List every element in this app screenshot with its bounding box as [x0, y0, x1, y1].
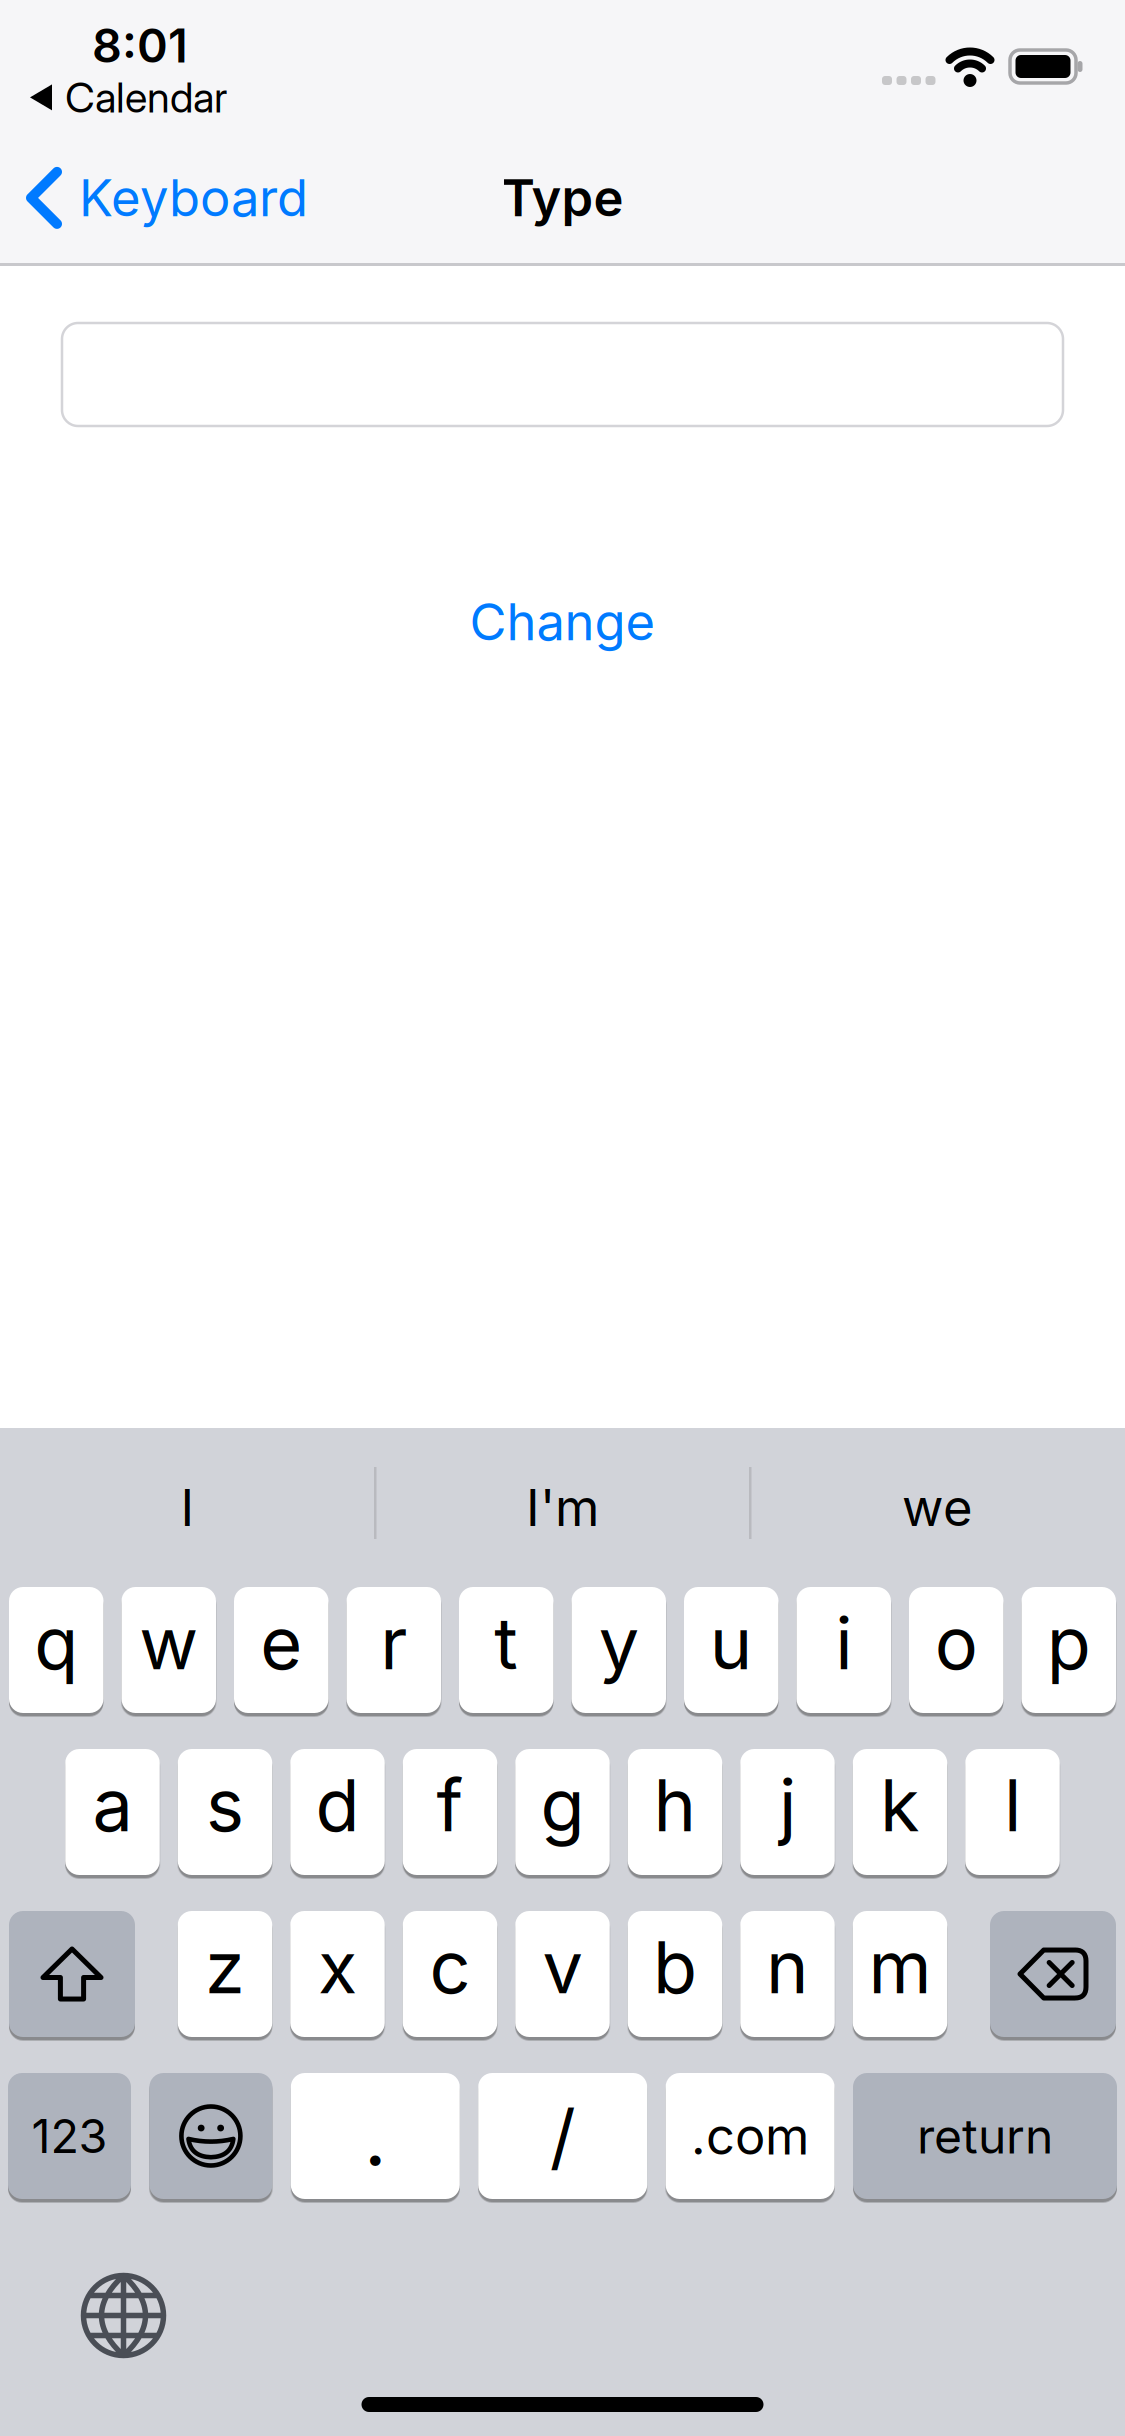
staticText: j [779, 1762, 796, 1847]
button[interactable]: Change [469, 592, 655, 652]
button[interactable]: Delete [990, 1911, 1116, 2037]
button[interactable]: o [909, 1587, 1003, 1713]
staticText: / [550, 2093, 576, 2178]
staticText: o [935, 1600, 978, 1685]
staticText: u [710, 1600, 753, 1685]
staticText: k [880, 1762, 920, 1847]
staticText: I [180, 1478, 194, 1537]
staticText: z [205, 1924, 245, 2009]
staticText: I'm [526, 1478, 599, 1537]
button[interactable]: . [291, 2073, 460, 2199]
button[interactable]: h [628, 1749, 722, 1875]
staticText: w [139, 1600, 198, 1685]
staticText: y [599, 1600, 639, 1685]
staticText: f [436, 1762, 463, 1847]
button[interactable]: Numbers [8, 2073, 131, 2199]
button[interactable]: w [121, 1587, 216, 1713]
staticText: s [206, 1762, 244, 1847]
button[interactable]: e [234, 1587, 328, 1713]
button[interactable]: p [1021, 1587, 1116, 1713]
staticText: h [653, 1762, 696, 1847]
staticText: p [1047, 1600, 1091, 1685]
button[interactable]: .com [666, 2073, 835, 2199]
button[interactable]: f [403, 1749, 497, 1875]
staticText: m [868, 1924, 931, 2009]
button[interactable]: Next keyboard [80, 2272, 166, 2358]
staticText: 8:01 [92, 18, 188, 73]
button[interactable]: l [965, 1749, 1060, 1875]
button[interactable]: y [571, 1587, 666, 1713]
staticText: v [542, 1924, 582, 2009]
staticText: b [653, 1924, 697, 2009]
button[interactable]: I'm [375, 1428, 750, 1587]
button[interactable]: c [403, 1911, 497, 2037]
staticText: we [902, 1478, 973, 1537]
button[interactable]: s [178, 1749, 272, 1875]
button[interactable]: Shift [9, 1911, 135, 2037]
button[interactable]: Emoji [149, 2073, 272, 2199]
button[interactable]: a [65, 1749, 160, 1875]
button[interactable]: i [796, 1587, 891, 1713]
button[interactable]: z [178, 1911, 272, 2037]
button[interactable]: v [515, 1911, 610, 2037]
staticText: Keyboard [79, 168, 308, 228]
button[interactable]: Return [853, 2073, 1117, 2199]
staticText: r [380, 1600, 407, 1685]
staticText: Change [469, 592, 655, 652]
staticText: c [429, 1924, 470, 2009]
staticText: t [494, 1600, 518, 1685]
staticText: d [315, 1762, 359, 1847]
staticText: g [540, 1762, 584, 1847]
button[interactable]: d [290, 1749, 385, 1875]
staticText: e [260, 1600, 302, 1685]
button[interactable]: t [459, 1587, 553, 1713]
button[interactable]: n [740, 1911, 835, 2037]
staticText: i [835, 1600, 852, 1685]
button[interactable]: g [515, 1749, 610, 1875]
staticText: n [766, 1924, 809, 2009]
button[interactable]: q [9, 1587, 103, 1713]
button[interactable]: / [478, 2073, 647, 2199]
button[interactable]: u [684, 1587, 778, 1713]
staticText: .com [691, 2106, 809, 2166]
staticText: Calendar [65, 73, 227, 122]
button[interactable]: m [853, 1911, 947, 2037]
staticText: x [318, 1924, 357, 2009]
staticText: l [1004, 1762, 1021, 1847]
staticText: a [92, 1762, 132, 1847]
button[interactable]: we [750, 1428, 1125, 1587]
staticText: 123 [31, 2108, 107, 2164]
button[interactable]: Back [31, 168, 308, 228]
button[interactable]: I [0, 1428, 375, 1587]
button[interactable]: j [740, 1749, 835, 1875]
button[interactable]: b [628, 1911, 722, 2037]
button[interactable]: k [853, 1749, 947, 1875]
staticText: return [917, 2108, 1053, 2164]
staticText: . [364, 2089, 387, 2183]
button[interactable]: Text field [62, 323, 1063, 426]
button[interactable]: x [290, 1911, 385, 2037]
button[interactable]: r [346, 1587, 441, 1713]
staticText: q [34, 1600, 78, 1685]
staticText: Type [501, 168, 623, 228]
